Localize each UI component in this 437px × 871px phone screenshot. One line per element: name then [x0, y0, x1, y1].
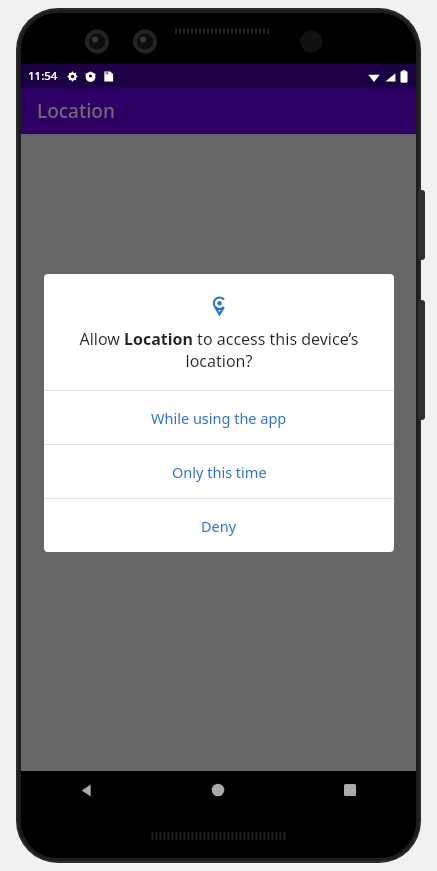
staticText: Allow Location to access this device’s l… [66, 328, 372, 372]
button[interactable]: While using the app [44, 391, 394, 444]
staticText: While using the app [151, 408, 287, 428]
button[interactable]: Deny [44, 499, 394, 552]
staticText: Only this time [172, 462, 267, 482]
button[interactable]: Recent apps [284, 771, 416, 809]
button[interactable]: Back [21, 771, 152, 809]
staticText: Location [37, 98, 115, 124]
staticText: 11:54 [28, 68, 58, 84]
button[interactable]: Only this time [44, 445, 394, 498]
button[interactable]: Home [152, 771, 284, 809]
staticText: Deny [201, 516, 237, 536]
